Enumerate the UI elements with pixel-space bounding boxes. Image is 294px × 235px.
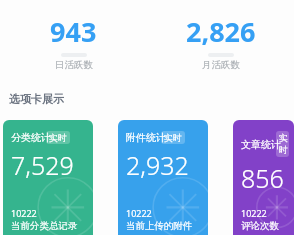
- button[interactable]: 分类统计: [3, 120, 93, 235]
- staticText: 实时: [49, 132, 67, 143]
- staticText: 分类统计: [11, 131, 51, 144]
- staticText: 当前分类总记录: [11, 220, 78, 232]
- staticText: 实时: [164, 132, 182, 143]
- staticText: 日活跃数: [55, 59, 93, 71]
- staticText: 10222: [126, 207, 152, 219]
- staticText: 当前上传的附件: [126, 220, 193, 232]
- staticText: 评论次数: [241, 220, 279, 232]
- staticText: 2,826: [186, 13, 256, 50]
- button[interactable]: 2,826: [147, 13, 294, 71]
- staticText: 选项卡展示: [9, 92, 64, 106]
- staticText: 2,932: [126, 148, 189, 182]
- staticText: 856: [241, 161, 284, 195]
- staticText: 10222: [11, 207, 37, 219]
- staticText: 文章统计: [241, 138, 281, 151]
- button[interactable]: 附件统计: [118, 120, 208, 235]
- staticText: 实时: [279, 132, 286, 156]
- button[interactable]: 943: [0, 13, 147, 71]
- staticText: 7,529: [11, 148, 74, 182]
- button[interactable]: 文章统计: [233, 120, 294, 235]
- staticText: 943: [50, 13, 97, 50]
- staticText: 月活跃数: [202, 59, 240, 71]
- staticText: 10222: [241, 207, 267, 219]
- staticText: 附件统计: [126, 131, 166, 144]
